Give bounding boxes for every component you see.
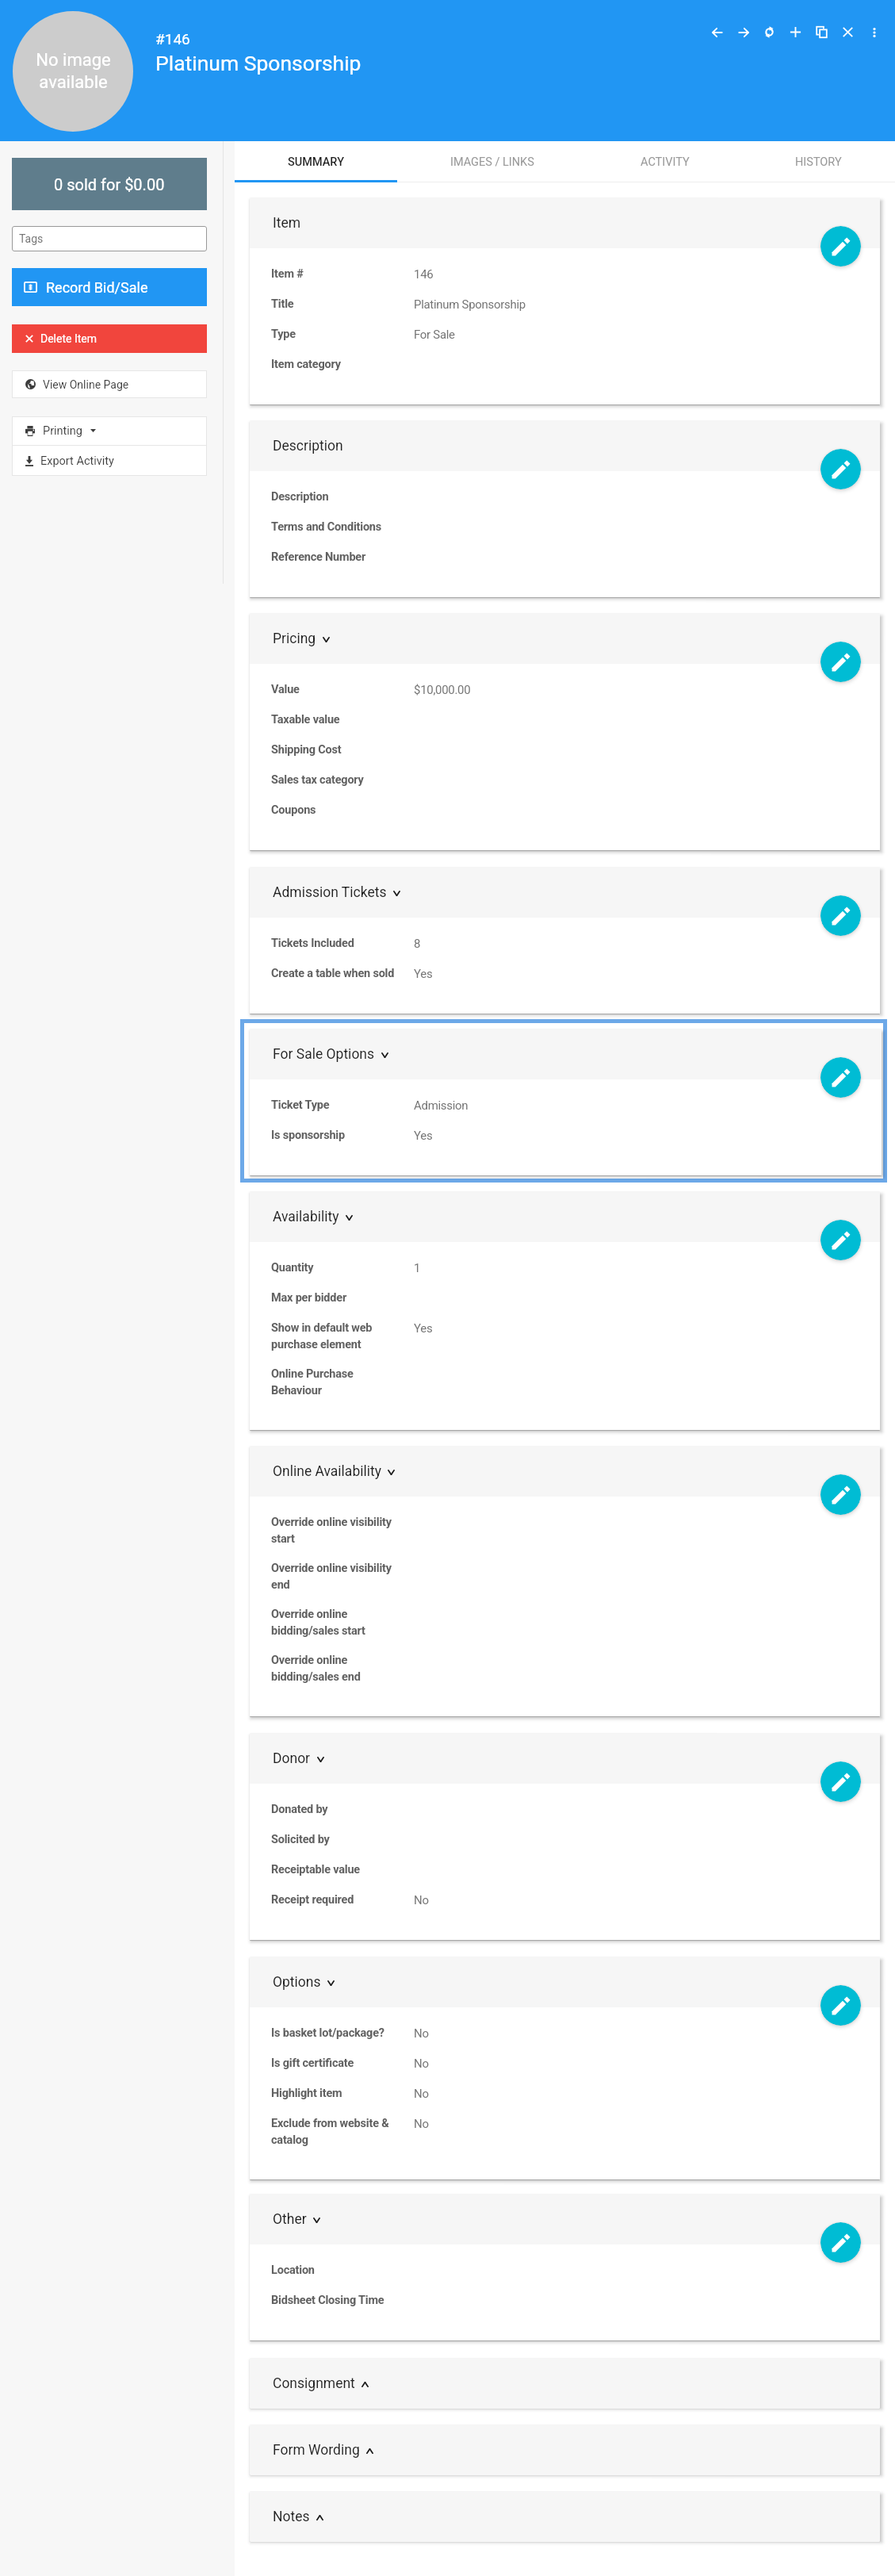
staticText: Export Activity <box>40 454 114 468</box>
staticText: $10,000.00 <box>414 683 471 697</box>
button[interactable]: Record Bid/Sale <box>12 268 207 306</box>
staticText: IMAGES / LINKS <box>450 155 534 169</box>
button[interactable]: Close <box>835 19 861 45</box>
staticText: Quantity <box>271 1261 314 1275</box>
staticText: Record Bid/Sale <box>46 279 148 296</box>
button[interactable]: Edit Description <box>820 449 861 489</box>
button[interactable]: Export Activity <box>12 446 207 476</box>
staticText: Description <box>273 438 343 454</box>
staticText: Value <box>271 683 300 696</box>
staticText: For Sale <box>414 328 455 342</box>
staticText: Platinum Sponsorship <box>155 51 361 75</box>
staticText: Solicited by <box>271 1833 330 1846</box>
staticText: Override online bidding/sales start <box>271 1608 365 1637</box>
staticText: Terms and Conditions <box>271 520 382 534</box>
staticText: Donated by <box>271 1803 328 1816</box>
button[interactable]: Admission Tickets <box>250 868 880 918</box>
staticText: Receiptable value <box>271 1863 360 1876</box>
staticText: No <box>414 2087 429 2101</box>
staticText: 146 <box>414 267 434 282</box>
button[interactable]: More options <box>861 19 887 45</box>
staticText: Yes <box>414 1321 433 1336</box>
staticText: Ticket Type <box>271 1098 330 1112</box>
button[interactable]: Edit Options <box>820 1985 861 2026</box>
staticText: Options <box>273 1974 321 1991</box>
button[interactable]: Printing <box>12 416 207 445</box>
staticText: Location <box>271 2264 315 2277</box>
button[interactable]: 0 sold for $0.00 <box>12 158 207 210</box>
staticText: Shipping Cost <box>271 743 342 757</box>
staticText: Show in default web purchase element <box>271 1321 373 1351</box>
staticText: Platinum Sponsorship <box>414 297 526 312</box>
staticText: Delete Item <box>40 332 98 345</box>
button[interactable]: Edit Item <box>820 226 861 266</box>
button[interactable]: Other <box>250 2195 880 2244</box>
button[interactable]: Online Availability <box>250 1447 880 1497</box>
staticText: Title <box>271 297 294 311</box>
button[interactable]: Pricing <box>250 614 880 664</box>
staticText: Coupons <box>271 803 316 817</box>
button[interactable]: For Sale Options <box>250 1029 882 1079</box>
button[interactable]: Notes <box>250 2492 880 2542</box>
button[interactable]: View Online Page <box>12 370 207 398</box>
button[interactable]: Delete Item <box>12 324 207 353</box>
staticText: Override online visibility start <box>271 1516 392 1545</box>
staticText: No <box>414 2117 429 2131</box>
staticText: Donor <box>273 1750 311 1767</box>
staticText: Tickets Included <box>271 937 354 950</box>
staticText: Max per bidder <box>271 1291 346 1305</box>
button[interactable]: Edit Pricing <box>820 642 861 682</box>
staticText: No <box>414 1893 429 1907</box>
button[interactable]: Donor <box>250 1734 880 1784</box>
button[interactable]: Edit Admission Tickets <box>820 895 861 936</box>
staticText: 8 <box>414 937 421 951</box>
staticText: Is basket lot/package? <box>271 2026 384 2040</box>
staticText: Consignment <box>273 2375 355 2392</box>
button[interactable]: Edit Donor <box>820 1761 861 1802</box>
button[interactable]: Add <box>782 19 809 45</box>
button[interactable]: Duplicate <box>809 19 835 45</box>
button[interactable]: Edit Other <box>820 2222 861 2263</box>
button[interactable]: Edit For Sale Options <box>820 1057 861 1098</box>
button[interactable]: Back <box>704 19 730 45</box>
staticText: HISTORY <box>795 155 842 169</box>
staticText: Receipt required <box>271 1893 354 1907</box>
staticText: Availability <box>273 1209 339 1225</box>
staticText: Yes <box>414 1129 433 1143</box>
button[interactable]: Consignment <box>250 2359 880 2409</box>
staticText: Exclude from website & catalog <box>271 2117 389 2146</box>
button[interactable]: Item <box>250 198 880 248</box>
staticText: Override online bidding/sales end <box>271 1654 361 1683</box>
staticText: SUMMARY <box>288 155 345 169</box>
staticText: No <box>414 2026 429 2041</box>
staticText: No <box>414 2057 429 2071</box>
button[interactable]: Refresh <box>756 19 782 45</box>
staticText: Online Availability <box>273 1463 381 1480</box>
staticText: Admission <box>414 1098 469 1113</box>
staticText: Notes <box>273 2509 310 2525</box>
button[interactable]: IMAGES / LINKS <box>397 141 587 182</box>
button[interactable]: Edit Availability <box>820 1220 861 1260</box>
button[interactable]: Options <box>250 1957 880 2007</box>
button[interactable]: Forward <box>730 19 756 45</box>
button[interactable]: HISTORY <box>742 141 895 182</box>
staticText: Admission Tickets <box>273 884 387 901</box>
button[interactable]: Edit Online Availability <box>820 1474 861 1515</box>
button[interactable]: Description <box>250 421 880 471</box>
button[interactable]: Form Wording <box>250 2425 880 2475</box>
staticText: Highlight item <box>271 2087 342 2100</box>
staticText: Description <box>271 490 329 504</box>
staticText: Printing <box>43 424 83 438</box>
button[interactable]: ACTIVITY <box>587 141 742 182</box>
button[interactable]: Tags <box>12 226 207 251</box>
staticText: #146 <box>155 30 190 48</box>
button[interactable]: Availability <box>250 1192 880 1242</box>
staticText: Item category <box>271 358 341 371</box>
button[interactable]: SUMMARY <box>235 141 397 182</box>
staticText: Reference Number <box>271 550 366 564</box>
staticText: ACTIVITY <box>641 155 690 169</box>
staticText: Override online visibility end <box>271 1562 392 1591</box>
staticText: Tags <box>19 232 44 245</box>
staticText: For Sale Options <box>273 1046 375 1063</box>
staticText: Pricing <box>273 631 316 647</box>
